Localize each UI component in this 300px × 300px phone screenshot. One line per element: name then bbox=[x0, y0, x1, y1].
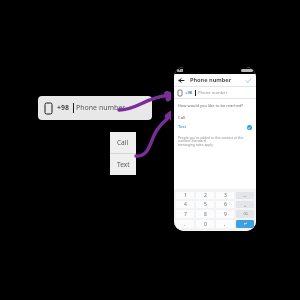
button[interactable]: Text bbox=[178, 122, 252, 132]
button[interactable]: Back bbox=[178, 77, 185, 84]
staticText: Phone number bbox=[198, 90, 228, 96]
button[interactable]: 8 bbox=[196, 210, 214, 218]
staticText: People you've added to this contact at t… bbox=[178, 135, 252, 147]
button[interactable]: 5 bbox=[196, 201, 214, 208]
staticText: 1 bbox=[184, 192, 187, 199]
button[interactable]: ␣ bbox=[236, 201, 254, 208]
staticText: 2 bbox=[204, 192, 207, 199]
staticText: 4 bbox=[184, 201, 187, 208]
button[interactable]: 9 bbox=[216, 210, 234, 218]
staticText: How would you like to be reached? bbox=[178, 103, 244, 108]
staticText: . bbox=[184, 221, 186, 228]
button[interactable]: Done bbox=[244, 76, 252, 84]
button[interactable]: — bbox=[236, 192, 254, 199]
staticText: 3 bbox=[224, 192, 227, 199]
button[interactable]: ⌫ bbox=[236, 210, 254, 218]
button[interactable]: , bbox=[216, 220, 234, 228]
staticText: 0 bbox=[204, 221, 207, 228]
staticText: Call bbox=[178, 115, 186, 121]
staticText: Phone number bbox=[76, 103, 126, 113]
button[interactable]: . bbox=[176, 220, 194, 228]
button[interactable]: 0 bbox=[196, 220, 214, 228]
staticText: 9:41 bbox=[177, 69, 184, 73]
button[interactable]: Text bbox=[110, 154, 136, 175]
staticText: +98 bbox=[185, 90, 193, 96]
staticText: ␣ bbox=[244, 203, 247, 207]
staticText: 6 bbox=[224, 201, 227, 208]
staticText: Text bbox=[117, 160, 130, 169]
staticText: +98 bbox=[57, 103, 70, 113]
button[interactable]: Call bbox=[110, 132, 136, 153]
button[interactable]: 1 bbox=[176, 192, 194, 199]
button[interactable]: 2 bbox=[196, 192, 214, 199]
staticText: 7 bbox=[184, 211, 187, 218]
staticText: , bbox=[224, 221, 226, 228]
staticText: Call bbox=[117, 138, 129, 147]
button[interactable]: Call bbox=[178, 113, 252, 122]
button[interactable]: 7 bbox=[176, 210, 194, 218]
button[interactable]: 4 bbox=[176, 201, 194, 208]
button[interactable]: 6 bbox=[216, 201, 234, 208]
staticText: ↵ bbox=[244, 222, 247, 226]
staticText: Phone number bbox=[190, 76, 232, 84]
button[interactable]: +98 bbox=[178, 87, 252, 98]
staticText: 8 bbox=[204, 211, 207, 218]
button[interactable]: 3 bbox=[216, 192, 234, 199]
staticText: ⌫ bbox=[243, 212, 248, 216]
staticText: 9 bbox=[224, 211, 227, 218]
staticText: 5 bbox=[204, 201, 207, 208]
staticText: Text bbox=[178, 124, 187, 130]
button[interactable]: +98 bbox=[38, 96, 152, 120]
staticText: — bbox=[243, 193, 247, 198]
button[interactable]: ↵ bbox=[236, 220, 254, 228]
